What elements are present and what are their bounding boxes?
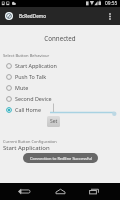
staticText: Connected bbox=[44, 34, 76, 42]
staticText: Start Application bbox=[3, 144, 50, 152]
staticText: Select Button Behaviour bbox=[3, 53, 50, 59]
button[interactable]: App icon bbox=[5, 12, 13, 20]
staticText: 09:55 bbox=[105, 0, 118, 7]
staticText: Mute bbox=[15, 84, 29, 91]
button[interactable]: Back bbox=[11, 183, 37, 200]
staticText: Connection to Redline Successful bbox=[30, 156, 92, 161]
staticText: Push To Talk bbox=[15, 73, 47, 80]
button[interactable]: Start Application bbox=[0, 60, 60, 71]
staticText: Set bbox=[50, 118, 58, 125]
button[interactable]: Mute bbox=[0, 82, 60, 93]
button[interactable]: Call Home bbox=[0, 104, 60, 115]
button[interactable]: Second Device bbox=[0, 93, 60, 104]
button[interactable]: More options bbox=[103, 9, 117, 23]
staticText: Current Button Configuration bbox=[3, 139, 57, 144]
button[interactable]: Home bbox=[47, 183, 73, 200]
staticText: Second Device bbox=[15, 95, 52, 102]
button[interactable]: Set bbox=[47, 116, 60, 127]
button[interactable]: Recents bbox=[81, 183, 107, 200]
button[interactable]: Push To Talk bbox=[0, 71, 60, 82]
staticText: Call Home bbox=[15, 106, 41, 113]
staticText: BcRedDemo bbox=[19, 13, 47, 19]
staticText: Start Application bbox=[15, 62, 57, 69]
button[interactable]: Number input field bbox=[50, 101, 116, 115]
